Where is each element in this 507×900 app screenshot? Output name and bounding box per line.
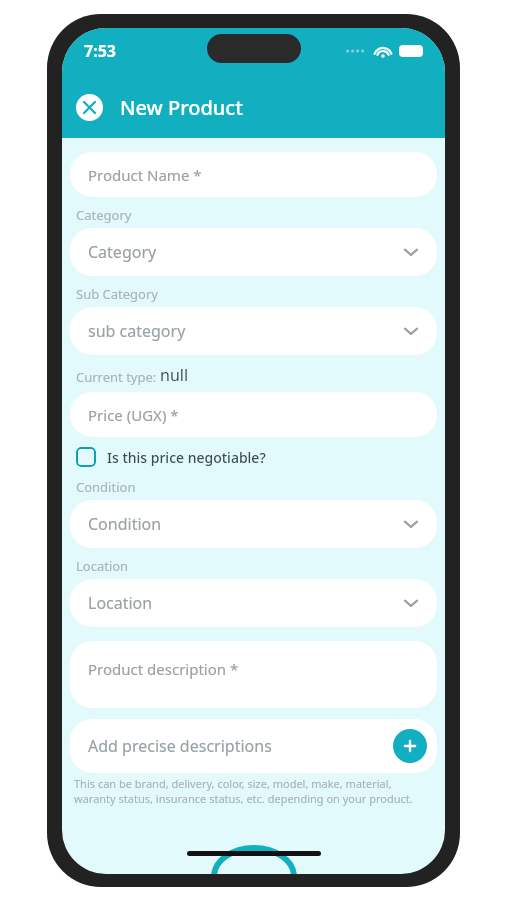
button[interactable]: Is this price negotiable? — [76, 447, 266, 467]
staticText: Category — [76, 206, 132, 224]
button[interactable]: sub category — [70, 307, 437, 355]
staticText: Condition — [88, 513, 162, 535]
staticText: null — [160, 364, 189, 386]
staticText: Current type: — [76, 368, 160, 386]
staticText: Product Name * — [88, 165, 202, 185]
button[interactable]: Add precise descriptions — [70, 719, 437, 773]
staticText: New Product — [120, 94, 243, 121]
button[interactable]: Product Name * — [70, 152, 437, 197]
staticText: Product description * — [88, 659, 239, 679]
button[interactable]: Price (UGX) * — [70, 392, 437, 437]
staticText: 7:53 — [84, 40, 116, 62]
staticText: Location — [76, 557, 129, 575]
button[interactable]: Category — [70, 228, 437, 276]
staticText: sub category — [88, 320, 186, 342]
staticText: Category — [88, 241, 157, 263]
staticText: Condition — [76, 478, 136, 496]
staticText: Sub Category — [76, 285, 158, 303]
staticText: Price (UGX) * — [88, 405, 179, 425]
button[interactable]: Product description * — [70, 641, 437, 708]
staticText: Is this price negotiable? — [107, 448, 266, 467]
button[interactable]: Add description — [393, 729, 427, 763]
staticText: This can be brand, delivery, color, size… — [74, 776, 413, 806]
staticText: Add precise descriptions — [88, 735, 272, 757]
staticText: Location — [88, 592, 153, 614]
button[interactable]: Location — [70, 579, 437, 627]
button[interactable]: Condition — [70, 500, 437, 548]
button[interactable]: Close — [76, 94, 103, 121]
